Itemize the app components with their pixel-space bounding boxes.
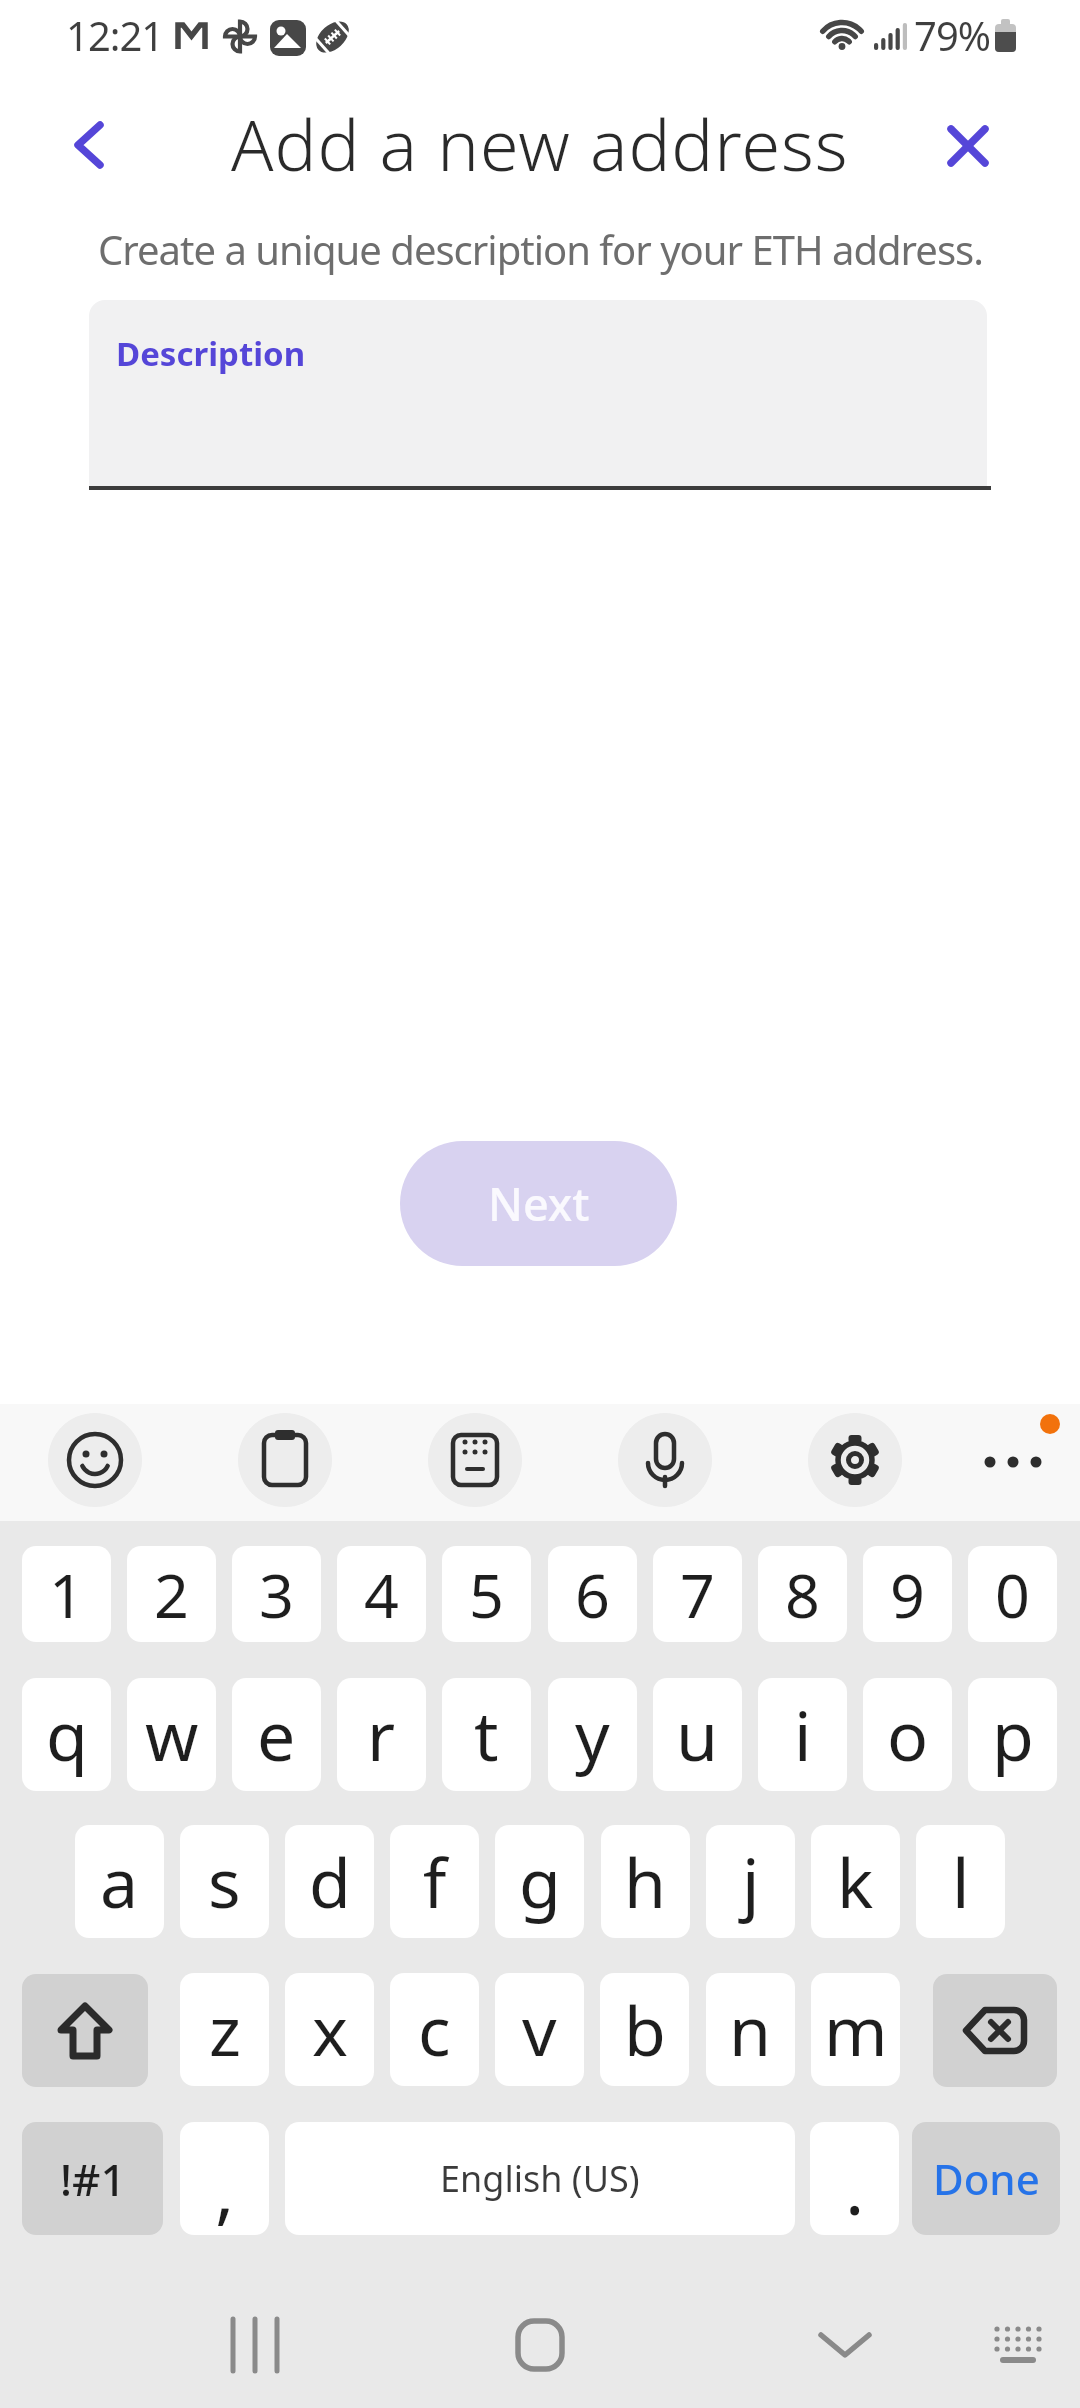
- button[interactable]: [795, 2295, 895, 2395]
- button[interactable]: f: [390, 1825, 479, 1938]
- staticText: c: [418, 1983, 451, 2076]
- staticText: k: [837, 1835, 874, 1928]
- button[interactable]: h: [601, 1825, 690, 1938]
- button[interactable]: v: [495, 1973, 584, 2086]
- button[interactable]: !#1: [22, 2122, 163, 2235]
- button[interactable]: .: [810, 2122, 899, 2235]
- button[interactable]: w: [127, 1678, 216, 1791]
- staticText: 79%: [914, 8, 990, 62]
- button[interactable]: o: [863, 1678, 952, 1791]
- button[interactable]: z: [180, 1973, 269, 2086]
- staticText: s: [208, 1835, 241, 1928]
- staticText: 1: [49, 1553, 84, 1636]
- staticText: w: [145, 1688, 199, 1781]
- staticText: i: [794, 1688, 812, 1781]
- button[interactable]: [618, 1413, 712, 1507]
- staticText: m: [824, 1983, 888, 2076]
- button[interactable]: [968, 2295, 1068, 2395]
- button[interactable]: [933, 1974, 1057, 2087]
- staticText: d: [309, 1835, 351, 1928]
- button[interactable]: [428, 1413, 522, 1507]
- staticText: 7: [680, 1553, 715, 1636]
- staticText: 12:21: [66, 8, 164, 62]
- button[interactable]: b: [600, 1973, 689, 2086]
- staticText: g: [519, 1835, 561, 1928]
- button[interactable]: k: [811, 1825, 900, 1938]
- button[interactable]: [924, 101, 1012, 189]
- staticText: 9: [890, 1553, 925, 1636]
- button[interactable]: i: [758, 1678, 847, 1791]
- staticText: Add a new address: [231, 96, 849, 188]
- button[interactable]: [205, 2295, 305, 2395]
- staticText: x: [312, 1983, 348, 2076]
- button[interactable]: e: [232, 1678, 321, 1791]
- button[interactable]: n: [706, 1973, 795, 2086]
- button[interactable]: 5: [442, 1546, 531, 1642]
- button[interactable]: q: [22, 1678, 111, 1791]
- button[interactable]: x: [285, 1973, 374, 2086]
- staticText: n: [729, 1983, 772, 2076]
- button[interactable]: 0: [968, 1546, 1057, 1642]
- staticText: q: [46, 1688, 88, 1781]
- button[interactable]: d: [285, 1825, 374, 1938]
- button[interactable]: 1: [22, 1546, 111, 1642]
- staticText: r: [367, 1688, 396, 1781]
- staticText: 6: [575, 1553, 610, 1636]
- button[interactable]: Next: [400, 1141, 677, 1266]
- button[interactable]: 4: [337, 1546, 426, 1642]
- staticText: 5: [469, 1553, 504, 1636]
- button[interactable]: [22, 1974, 148, 2087]
- staticText: j: [742, 1835, 760, 1928]
- button[interactable]: 7: [653, 1546, 742, 1642]
- button[interactable]: 9: [863, 1546, 952, 1642]
- staticText: Create a unique description for your ETH…: [98, 222, 983, 276]
- staticText: y: [575, 1688, 610, 1781]
- button[interactable]: c: [390, 1973, 479, 2086]
- button[interactable]: a: [75, 1825, 164, 1938]
- staticText: h: [624, 1835, 667, 1928]
- button[interactable]: [48, 1413, 142, 1507]
- button[interactable]: y: [548, 1678, 637, 1791]
- button[interactable]: [808, 1413, 902, 1507]
- button[interactable]: ,: [180, 2122, 269, 2235]
- button[interactable]: u: [653, 1678, 742, 1791]
- staticText: 8: [785, 1553, 820, 1636]
- staticText: Done: [933, 2150, 1040, 2207]
- button[interactable]: l: [916, 1825, 1005, 1938]
- button[interactable]: g: [495, 1825, 584, 1938]
- staticText: 4: [364, 1553, 399, 1636]
- button[interactable]: j: [706, 1825, 795, 1938]
- staticText: u: [676, 1688, 719, 1781]
- staticText: t: [474, 1688, 499, 1781]
- staticText: p: [992, 1688, 1034, 1781]
- staticText: ,: [215, 2140, 235, 2235]
- button[interactable]: [44, 101, 132, 189]
- button[interactable]: English (US): [285, 2122, 795, 2235]
- button[interactable]: t: [442, 1678, 531, 1791]
- button[interactable]: [238, 1413, 332, 1507]
- button[interactable]: [492, 2295, 592, 2395]
- staticText: l: [952, 1835, 970, 1928]
- staticText: b: [624, 1983, 666, 2076]
- staticText: 0: [995, 1553, 1030, 1636]
- staticText: a: [100, 1835, 139, 1928]
- button[interactable]: s: [180, 1825, 269, 1938]
- button[interactable]: Description: [89, 300, 987, 486]
- staticText: z: [209, 1983, 241, 2076]
- button[interactable]: 2: [127, 1546, 216, 1642]
- staticText: e: [257, 1688, 296, 1781]
- staticText: Next: [488, 1173, 590, 1234]
- button[interactable]: 3: [232, 1546, 321, 1642]
- button[interactable]: p: [968, 1678, 1057, 1791]
- staticText: 2: [154, 1553, 189, 1636]
- staticText: v: [522, 1983, 557, 2076]
- button[interactable]: 8: [758, 1546, 847, 1642]
- staticText: English (US): [440, 2154, 640, 2203]
- button[interactable]: [968, 1413, 1062, 1507]
- button[interactable]: 6: [548, 1546, 637, 1642]
- button[interactable]: Done: [912, 2122, 1060, 2235]
- button[interactable]: m: [811, 1973, 900, 2086]
- staticText: f: [423, 1835, 447, 1928]
- button[interactable]: r: [337, 1678, 426, 1791]
- staticText: .: [845, 2138, 865, 2235]
